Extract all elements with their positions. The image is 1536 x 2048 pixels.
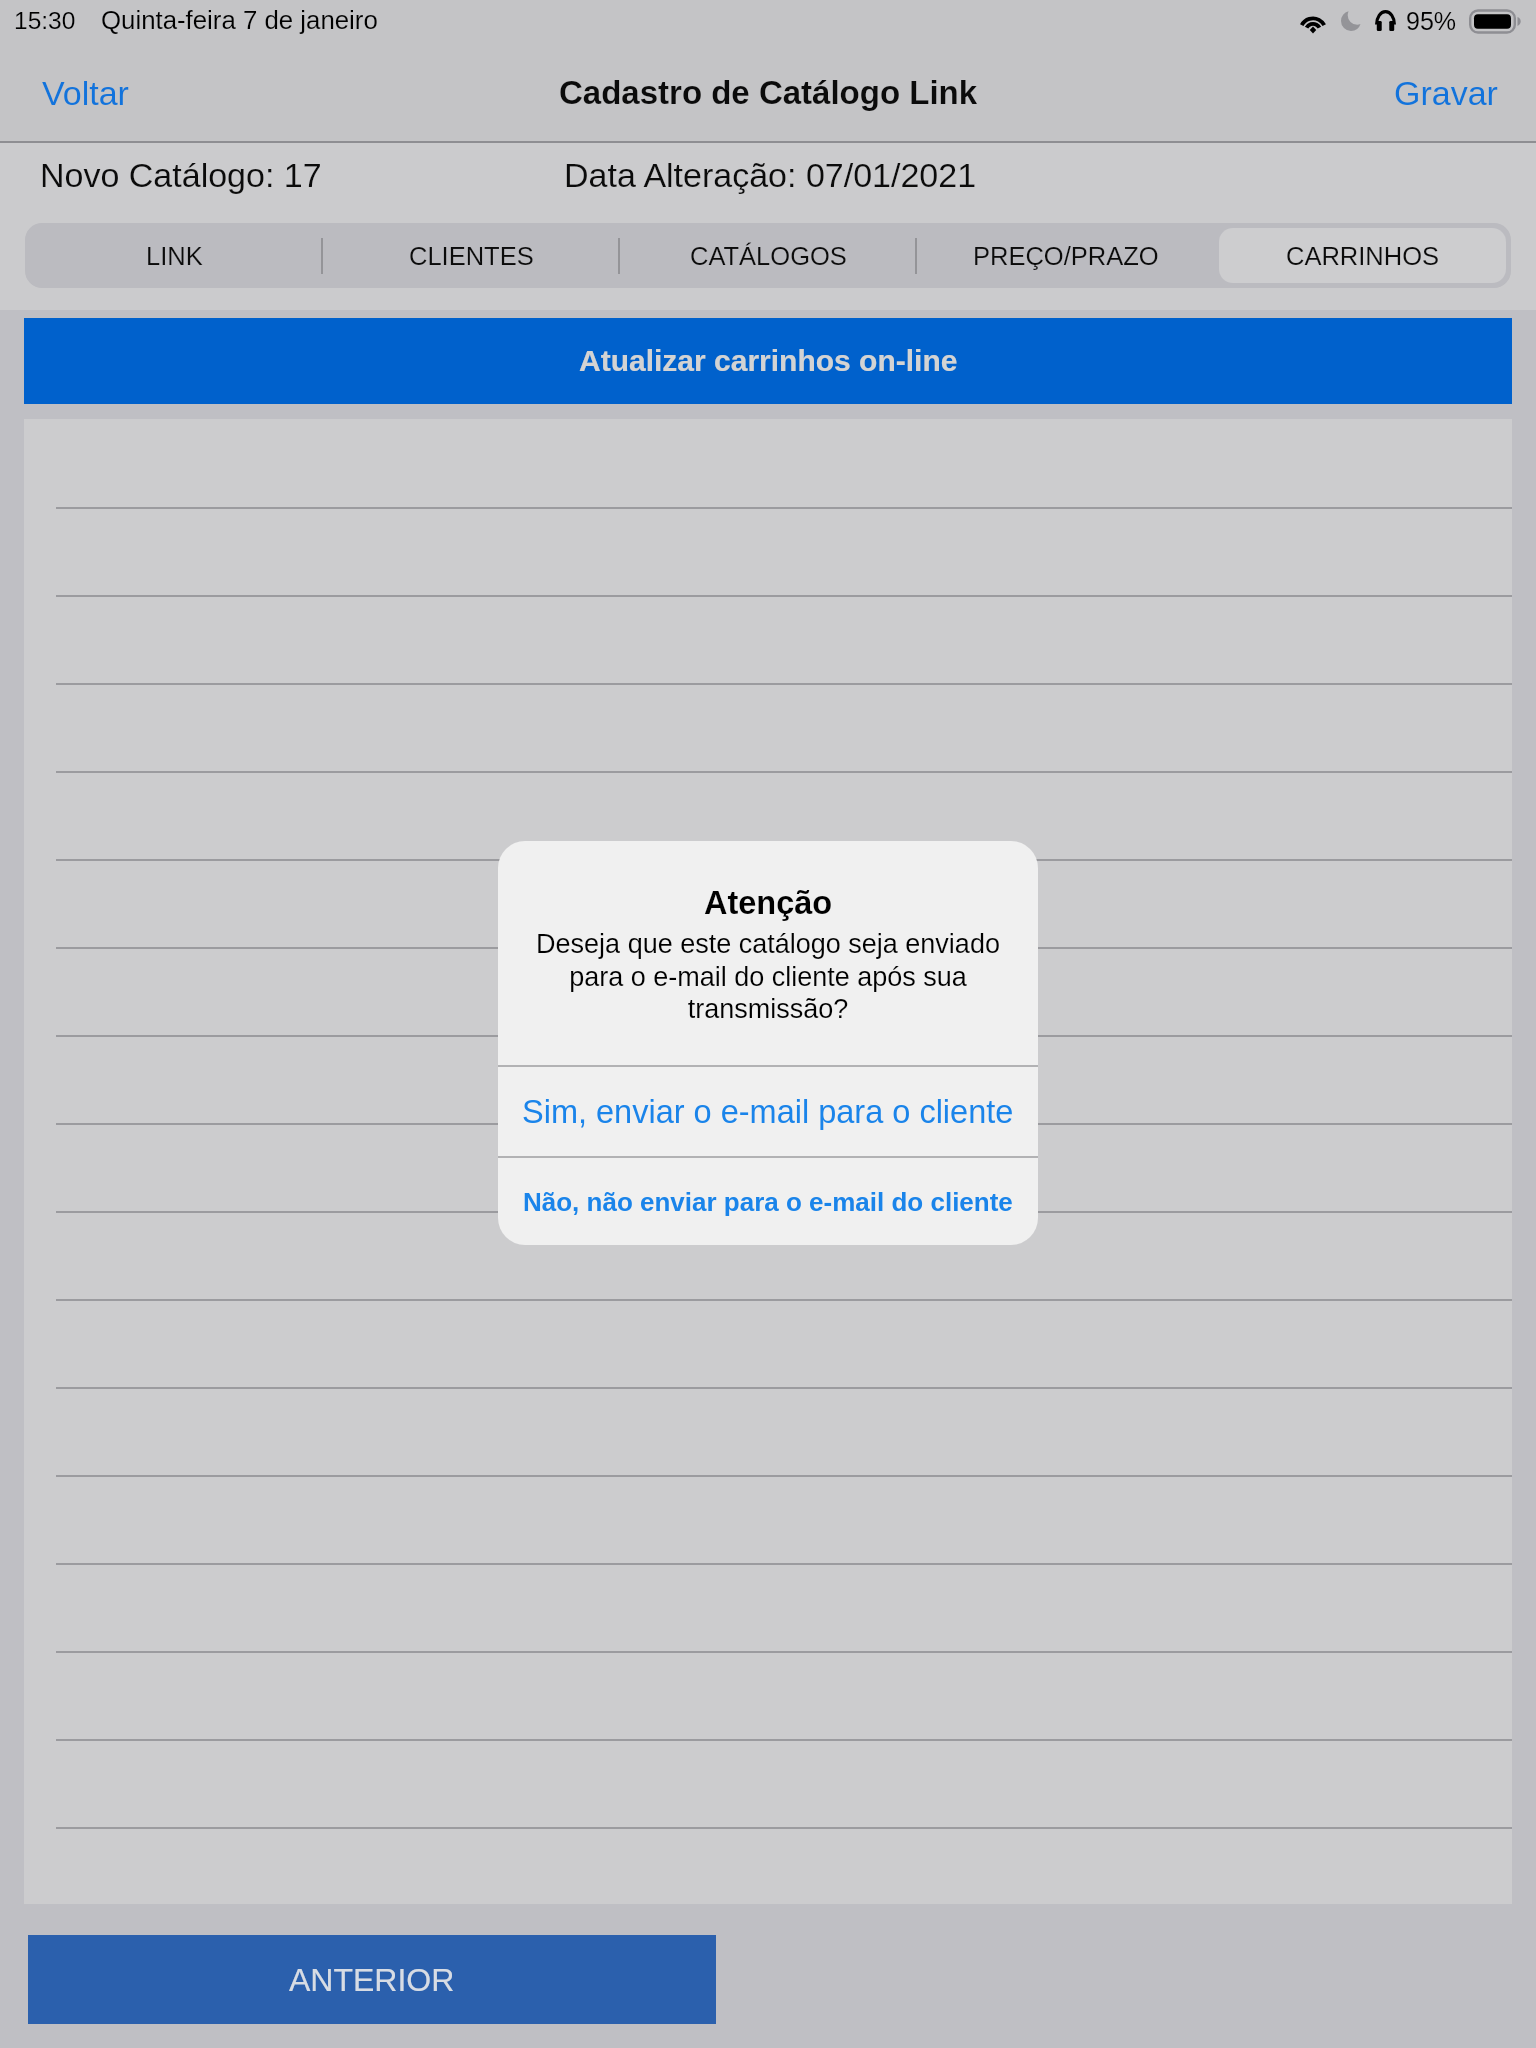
staticText: ANTERIOR [289,1962,455,1998]
staticText: Gravar [1394,74,1498,112]
other: Battery 95 percent [1469,9,1522,34]
staticText: Voltar [42,74,129,112]
button[interactable]: Não, não enviar para o e-mail do cliente [498,1158,1038,1245]
staticText: Cadastro de Catálogo Link [559,74,978,111]
button[interactable] [24,1739,1512,1827]
button[interactable] [24,947,1512,1035]
button[interactable] [24,771,1512,859]
button[interactable]: LINK [25,223,323,288]
staticText: Deseja que este catálogo seja enviado pa… [508,929,1028,1023]
other: Wi-Fi [1299,10,1327,32]
staticText: CATÁLOGOS [690,242,847,270]
button[interactable] [24,859,1512,947]
button[interactable]: PREÇO/PRAZO [917,223,1214,288]
button[interactable] [24,1827,1512,1904]
button[interactable]: ANTERIOR [28,1935,716,2024]
button[interactable] [24,1123,1512,1211]
other: Do Not Disturb [1341,11,1361,31]
staticText: Atenção [704,885,833,921]
staticText: CLIENTES [409,242,534,270]
button[interactable]: Gravar [1356,42,1536,143]
button[interactable]: CLIENTES [323,223,620,288]
button[interactable] [24,683,1512,771]
staticText: LINK [146,242,203,270]
button[interactable] [24,1299,1512,1387]
button[interactable] [24,1211,1512,1299]
staticText: Novo Catálogo: 17 [40,156,322,194]
button[interactable] [24,1651,1512,1739]
button[interactable]: CATÁLOGOS [620,223,917,288]
staticText: PREÇO/PRAZO [973,242,1159,270]
staticText: CARRINHOS [1286,242,1440,270]
staticText: Sim, enviar o e-mail para o cliente [522,1094,1014,1130]
staticText: 95% [1406,7,1457,35]
button[interactable]: Voltar [0,42,171,143]
button[interactable] [24,1387,1512,1475]
staticText: Data Alteração: 07/01/2021 [564,156,977,194]
staticText: Não, não enviar para o e-mail do cliente [523,1187,1013,1216]
other: Headphones connected [1375,11,1396,31]
button[interactable] [24,595,1512,683]
button[interactable] [24,1035,1512,1123]
staticText: Atualizar carrinhos on-line [579,344,958,378]
button[interactable] [24,1563,1512,1651]
staticText: 15:30 [14,7,76,34]
button[interactable]: Sim, enviar o e-mail para o cliente [498,1067,1038,1156]
button[interactable] [24,1475,1512,1563]
button[interactable]: CARRINHOS [1214,223,1511,288]
button[interactable] [24,507,1512,595]
button[interactable]: Atualizar carrinhos on-line [24,318,1512,404]
staticText: Quinta-feira 7 de janeiro [101,6,378,35]
